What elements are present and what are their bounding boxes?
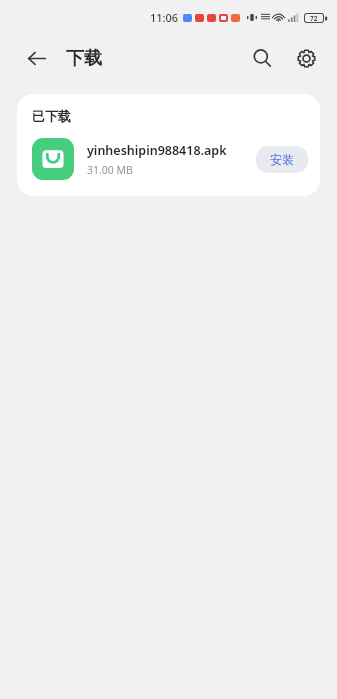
button[interactable]: yinheshipin988418.apk [17,138,320,180]
staticText: 31.00 MB [87,163,133,177]
staticText: yinheshipin988418.apk [87,142,227,159]
button[interactable]: 安装 [256,146,308,173]
staticText: 下载 [66,47,102,70]
staticText: 已下载 [32,108,71,124]
staticText: 安装 [270,152,294,167]
staticText: 11:06 [150,10,179,25]
button[interactable]: Back [20,42,52,74]
button[interactable]: Search [245,41,279,75]
button[interactable]: Settings [289,41,323,75]
staticText: 72 [310,14,318,22]
